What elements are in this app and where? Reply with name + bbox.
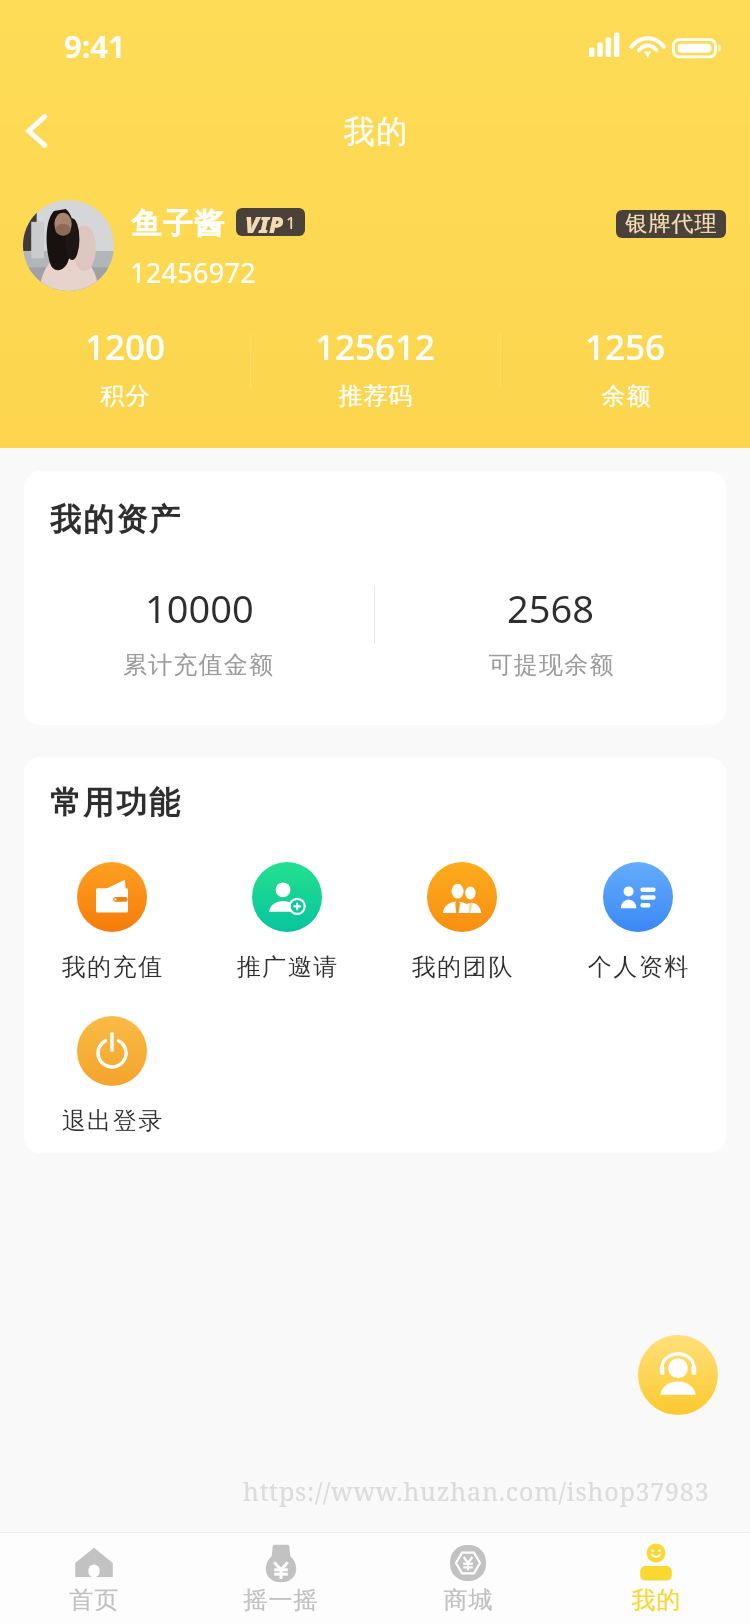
button[interactable]: 1256 [501,323,750,411]
button[interactable]: 个人资料 [550,862,726,982]
staticText: 我的充值 [61,952,163,982]
staticText: 退出登录 [61,1106,163,1136]
button[interactable]: 我的团队 [374,862,550,982]
button[interactable]: 返回 [6,100,68,162]
button[interactable]: 用户头像 [23,200,114,291]
staticText: 积分 [100,381,150,411]
staticText: 我的 [631,1585,681,1615]
button[interactable]: 我的充值 [24,862,199,982]
staticText: VIP [245,208,284,236]
button[interactable]: 退出登录 [24,1016,199,1136]
button[interactable]: 银牌代理 [616,210,726,238]
staticText: 个人资料 [587,952,689,982]
staticText: 125612 [315,323,436,371]
button[interactable]: 首页 [0,1533,187,1624]
staticText: 1200 [85,323,166,371]
staticText: 12456972 [130,254,256,291]
button[interactable]: 商城 [374,1533,562,1624]
button[interactable]: 10000 [24,582,374,680]
staticText: 9:41 [64,25,126,67]
button[interactable]: 125612 [251,323,500,411]
staticText: 推荐码 [338,381,413,411]
staticText: https://www.huzhan.com/ishop37983 [243,1474,710,1508]
staticText: 常用功能 [49,783,181,822]
staticText: 银牌代理 [625,210,717,238]
staticText: 10000 [145,582,254,634]
button[interactable]: 摇一摇 [187,1533,374,1624]
staticText: 可提现余额 [488,650,614,680]
button[interactable]: 在线客服 [638,1335,718,1415]
button[interactable]: 我的 [562,1533,750,1624]
staticText: 我的团队 [411,952,513,982]
staticText: 推广邀请 [236,952,338,982]
button[interactable]: 1200 [0,323,250,411]
staticText: 累计充值金额 [123,650,275,680]
button[interactable]: 2568 [375,582,726,680]
button[interactable]: VIP [236,208,305,236]
button[interactable]: 推广邀请 [199,862,374,982]
staticText: 2568 [507,582,594,634]
staticText: 摇一摇 [243,1585,318,1615]
staticText: 商城 [443,1585,493,1615]
staticText: 我的 [343,112,408,151]
staticText: 我的资产 [49,500,181,539]
staticText: 1256 [585,323,666,371]
staticText: 余额 [601,381,651,411]
staticText: 1 [286,211,296,234]
staticText: 鱼子酱 [131,205,226,243]
staticText: 首页 [69,1585,119,1615]
